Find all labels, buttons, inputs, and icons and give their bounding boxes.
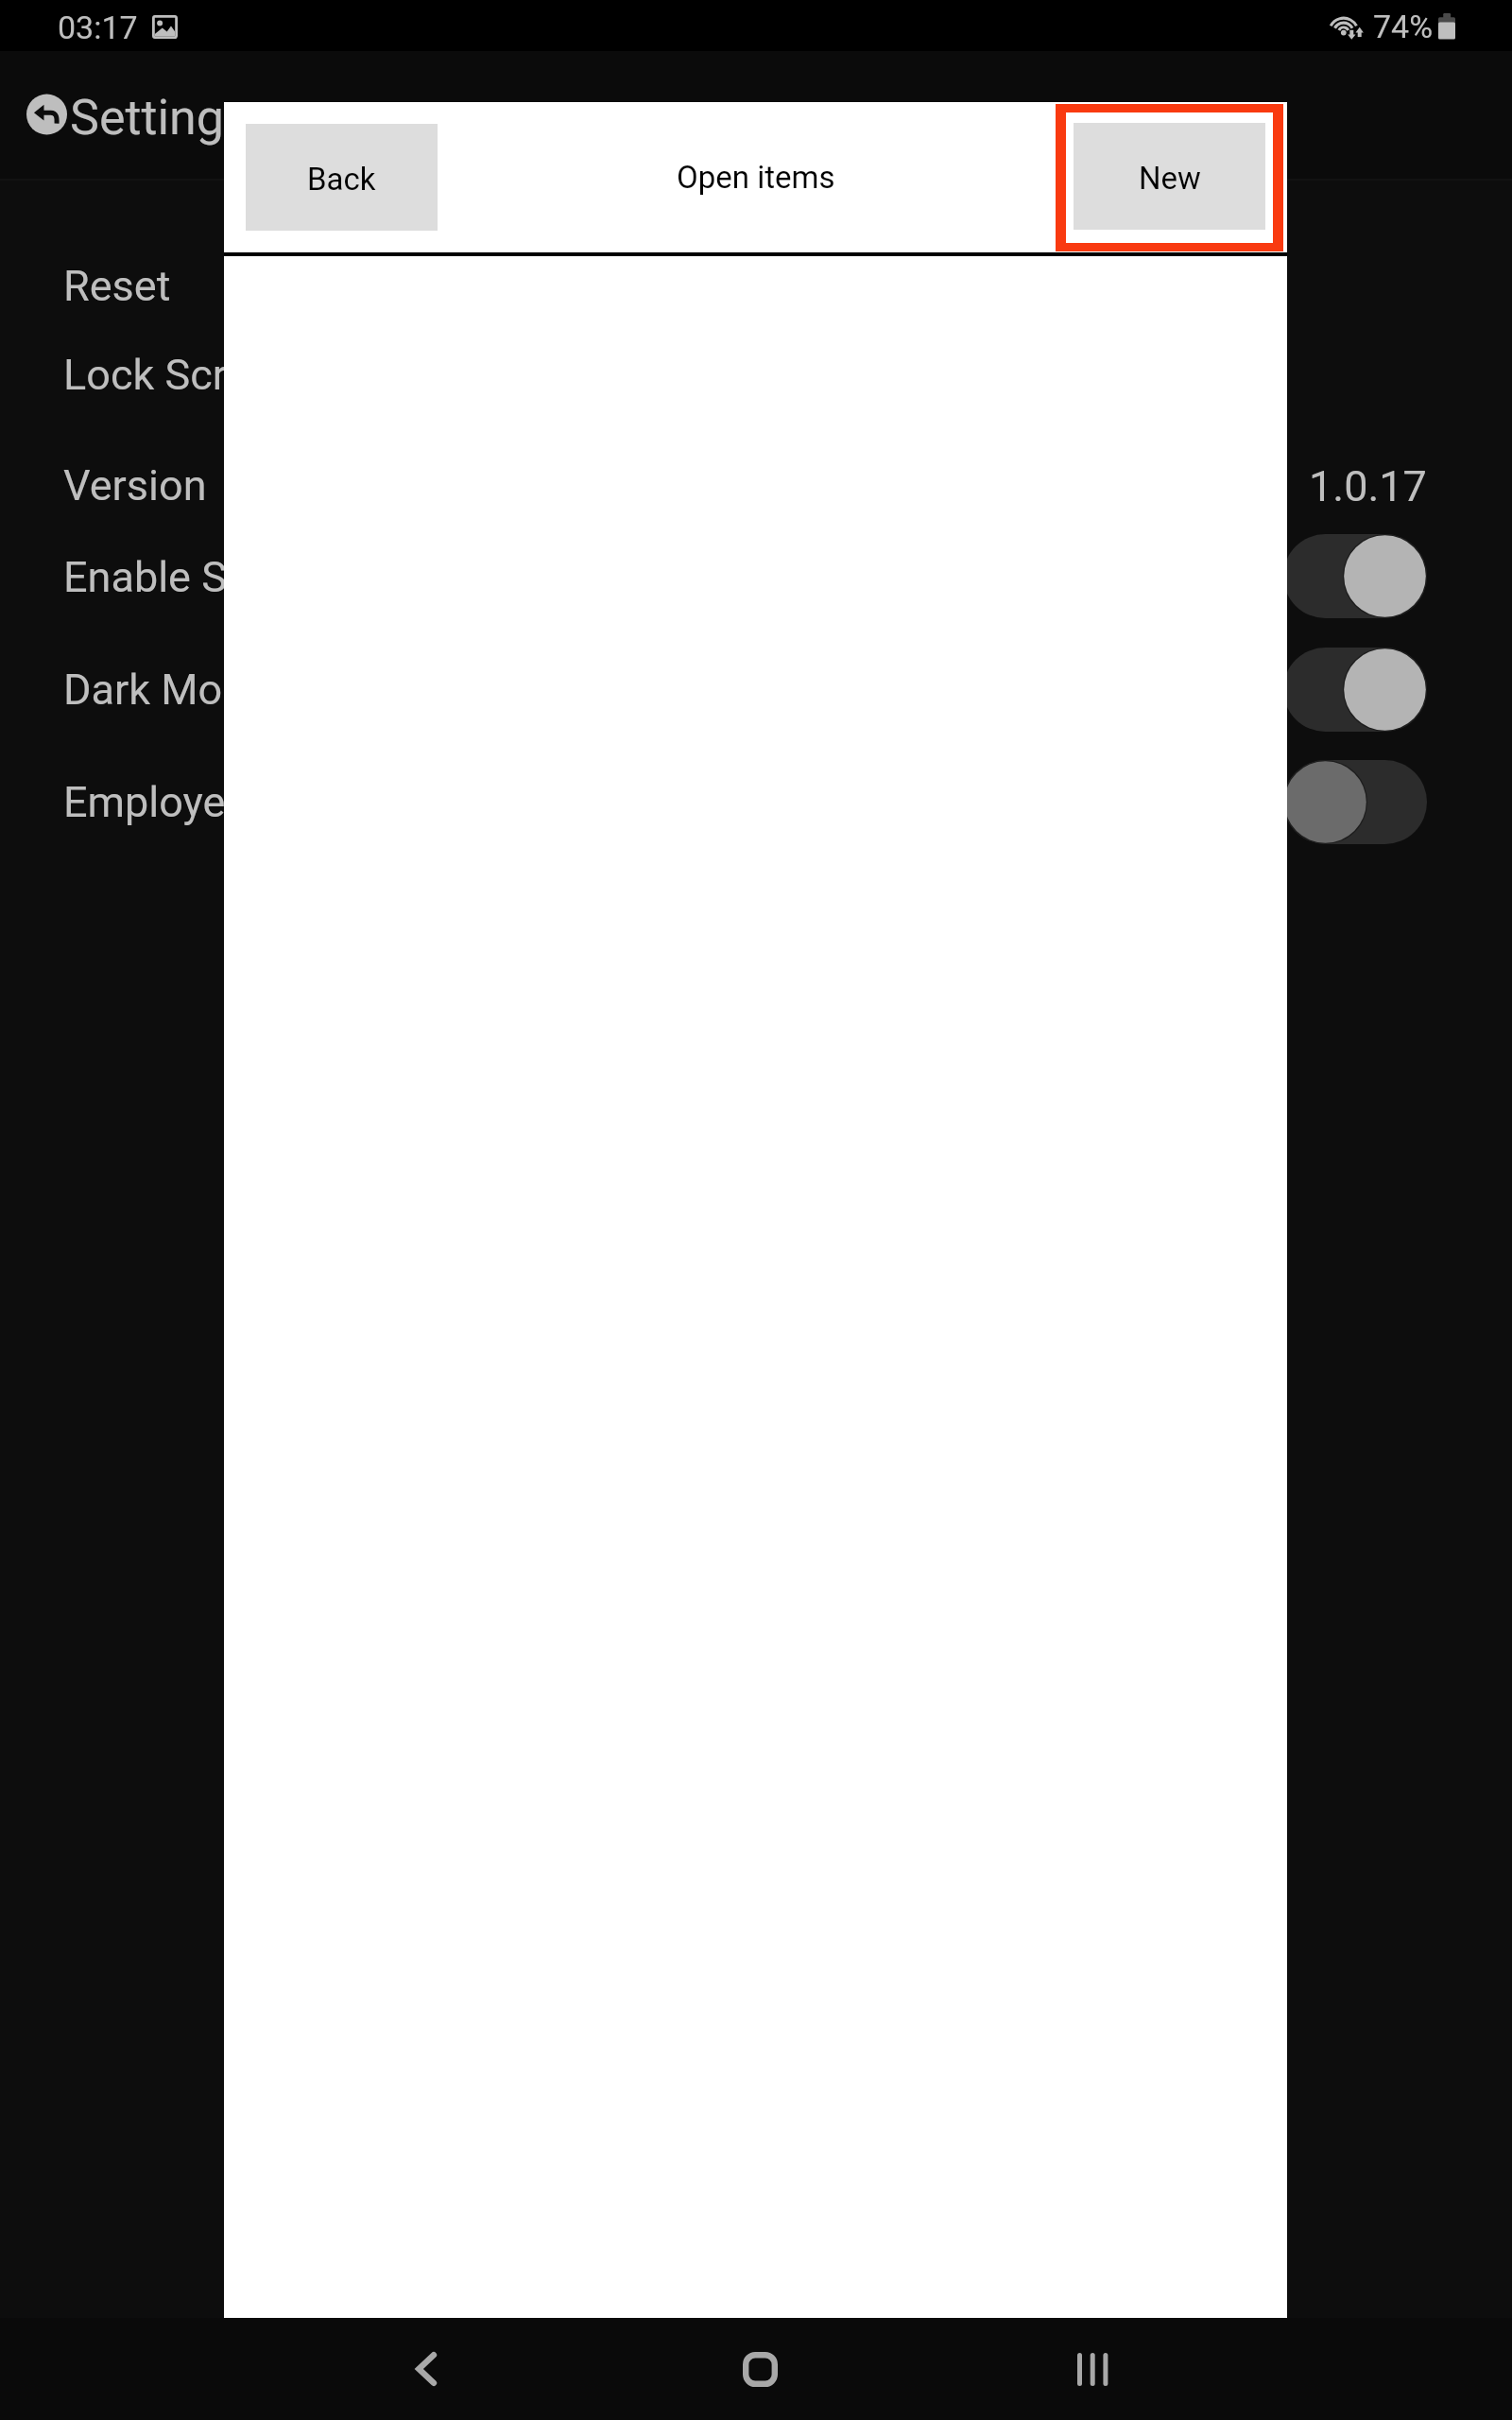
- staticText: New: [1139, 160, 1201, 197]
- button[interactable]: Reset: [0, 241, 1512, 330]
- button[interactable]: Employee Mode toggle, off: [1283, 760, 1427, 844]
- staticText: 1.0.17: [1309, 461, 1427, 511]
- button[interactable]: Lock Screen: [0, 330, 1512, 419]
- button[interactable]: Enable Sync toggle, on: [1283, 534, 1427, 618]
- staticText: Dark Mode: [63, 665, 269, 715]
- button[interactable]: Dark Mode toggle, on: [1283, 648, 1427, 732]
- button[interactable]: Recent apps: [1017, 2318, 1168, 2420]
- button[interactable]: Employee Mode: [0, 757, 1512, 846]
- staticText: Settings: [70, 89, 249, 147]
- staticText: Version: [63, 460, 207, 510]
- button[interactable]: Back: [351, 2318, 502, 2420]
- staticText: Employee Mode: [63, 777, 367, 827]
- button[interactable]: Dark Mode: [0, 645, 1512, 734]
- button[interactable]: Back to previous screen: [0, 51, 1512, 179]
- staticText: Lock Screen: [63, 350, 296, 400]
- button[interactable]: Enable Sync: [0, 532, 1512, 621]
- button[interactable]: Home: [684, 2318, 835, 2420]
- staticText: Open items: [677, 159, 835, 196]
- staticText: Enable Sync: [63, 552, 293, 602]
- staticText: 03:17: [58, 9, 138, 46]
- staticText: Reset: [63, 261, 171, 311]
- button[interactable]: Back: [246, 124, 438, 231]
- button[interactable]: Version: [0, 441, 1512, 529]
- staticText: Back: [307, 161, 376, 198]
- staticText: 74%: [1373, 8, 1434, 45]
- button[interactable]: New: [1074, 123, 1265, 230]
